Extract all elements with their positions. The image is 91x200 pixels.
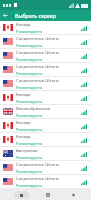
other: Signal strength [79, 107, 88, 117]
staticText: Выбрать сервер [15, 12, 57, 19]
other: Signal strength [79, 79, 88, 89]
staticText: Рекомендуется [16, 43, 43, 48]
button[interactable]: Соединенные Штаты [0, 161, 91, 174]
staticText: Соединенные Штаты [16, 176, 59, 182]
button[interactable]: Канада [0, 91, 91, 104]
staticText: Канада [16, 134, 31, 140]
button[interactable]: Соединенные Штаты [0, 175, 91, 188]
staticText: Соединенные Штаты [16, 50, 59, 56]
staticText: Соединенные Штаты [16, 36, 59, 42]
staticText: Рекомендуется [16, 71, 43, 76]
button[interactable]: Home [42, 190, 53, 199]
staticText: Великобритания [16, 106, 51, 112]
button[interactable]: Соединенные Штаты [0, 77, 91, 90]
other: Signal strength [79, 51, 88, 61]
staticText: Рекомендуется [16, 99, 43, 104]
staticText: Соединенные Штаты [16, 78, 59, 84]
staticText: Рекомендуется [16, 169, 43, 174]
staticText: Соединенные Штаты [16, 162, 59, 168]
staticText: Рекомендуется [16, 141, 43, 146]
staticText: Рекомендуется [16, 57, 43, 62]
button[interactable]: Back [67, 190, 78, 199]
button[interactable]: Канада [0, 133, 91, 146]
other: Signal strength [79, 121, 88, 131]
button[interactable]: Recents [14, 191, 29, 199]
button[interactable]: Австралия [0, 147, 91, 160]
staticText: Канада [16, 120, 31, 126]
staticText: Соединенные Штаты [16, 64, 59, 70]
staticText: Рекомендуется [16, 113, 43, 118]
other: Signal strength [79, 93, 88, 103]
button[interactable]: Канада [0, 119, 91, 132]
staticText: Австралия [16, 148, 38, 154]
other: Signal strength [79, 177, 88, 187]
other: Signal strength [79, 23, 88, 33]
staticText: Рекомендуется [16, 183, 43, 188]
staticText: Канада [16, 22, 31, 28]
other: Signal strength [79, 149, 88, 159]
button[interactable]: Соединенные Штаты [0, 35, 91, 48]
staticText: Рекомендуется [16, 127, 43, 132]
other: Signal strength [79, 65, 88, 75]
staticText: Рекомендуется [16, 155, 43, 160]
other: Signal strength [79, 135, 88, 145]
button[interactable]: Соединенные Штаты [0, 49, 91, 62]
other: Signal strength [79, 163, 88, 173]
button[interactable]: Back [0, 10, 11, 21]
staticText: Рекомендуется [16, 29, 43, 34]
staticText: Рекомендуется [16, 85, 43, 90]
button[interactable]: Великобритания [0, 105, 91, 118]
button[interactable]: Соединенные Штаты [0, 63, 91, 76]
other: Signal strength [79, 37, 88, 47]
staticText: Канада [16, 92, 31, 98]
button[interactable]: Канада [0, 21, 91, 34]
